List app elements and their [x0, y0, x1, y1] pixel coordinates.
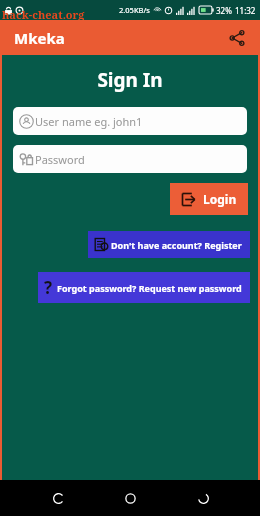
staticText: User name eg. john1	[35, 114, 143, 129]
button[interactable]: User name eg. john1	[13, 107, 247, 135]
staticText: 2.05KB/s	[119, 5, 150, 15]
button[interactable]: Home	[115, 483, 145, 513]
staticText: Sign In	[2, 67, 258, 93]
staticText: Don't have account? Register	[111, 239, 242, 251]
staticText: hack-cheat.org	[2, 7, 85, 20]
button[interactable]: Login	[170, 183, 248, 215]
staticText: Mkeka	[14, 28, 65, 48]
button[interactable]: Recents	[43, 483, 73, 513]
staticText: 32%	[216, 5, 232, 16]
button[interactable]: Back	[188, 483, 218, 513]
staticText: ?	[44, 276, 53, 299]
button[interactable]: Don't have account? Register	[88, 231, 250, 258]
staticText: Login	[203, 191, 237, 207]
button[interactable]: ?	[38, 272, 250, 303]
staticText: Password	[35, 152, 85, 167]
staticText: Forgot password? Request new password	[57, 282, 242, 294]
button[interactable]: Password	[13, 145, 247, 173]
staticText: 11:32	[235, 5, 256, 16]
button[interactable]: Share	[222, 23, 252, 53]
